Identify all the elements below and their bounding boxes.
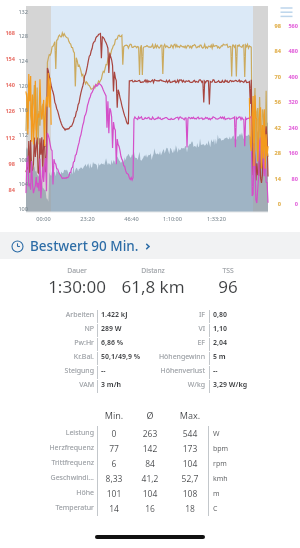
staticText: Höhe [18,488,94,498]
staticText: kmh [213,474,253,484]
staticText: 18 [165,503,215,515]
staticText: 1:10:00 [159,215,186,223]
staticText: 41,2 [125,473,175,485]
staticText: Kr.Bal. [20,352,94,362]
button[interactable]: Bestwert 90 Min. [0,232,300,259]
staticText: 50,1/49,9 % [101,352,173,362]
staticText: 0 [282,200,298,208]
staticText: 70 [269,73,281,81]
staticText: 3,29 W/kg [213,380,285,390]
staticText: m [213,489,253,499]
staticText: -- [101,366,173,376]
staticText: 132 [11,8,28,16]
staticText: 1,10 [213,324,285,334]
staticText: 173 [165,443,215,455]
staticText: 46:40 [118,215,145,223]
staticText: 104 [125,488,175,500]
staticText: 77 [89,443,139,455]
staticText: C [213,504,253,514]
staticText: 560 [282,22,298,30]
staticText: 0 [269,200,281,208]
staticText: Bestwert 90 Min. [30,237,139,255]
staticText: 400 [282,73,298,81]
staticText: 6 [89,458,139,470]
staticText: 128 [11,32,28,40]
staticText: Geschwindi... [18,473,94,483]
staticText: 116 [11,106,28,114]
staticText: W/kg [138,380,205,390]
staticText: 168 [0,29,15,37]
staticText: 84 [0,186,15,194]
staticText: TSS [188,266,268,275]
staticText: IF [138,310,205,320]
staticText: 2,04 [213,338,285,348]
staticText: rpm [213,459,253,469]
staticText: 140 [0,81,15,89]
staticText: 104 [165,458,215,470]
staticText: 100 [11,205,28,213]
staticText: 56 [269,98,281,106]
staticText: W [213,429,253,439]
staticText: 0 [89,428,139,440]
staticText: 16 [125,503,175,515]
staticText: 263 [125,428,175,440]
staticText: EF [138,338,205,348]
staticText: Min. [89,409,139,421]
staticText: 160 [282,149,298,157]
staticText: 108 [165,488,215,500]
staticText: 104 [11,180,28,188]
staticText: 6,86 % [101,338,173,348]
staticText: 8,33 [89,473,139,485]
staticText: 3 m/h [101,380,173,390]
staticText: Herzfrequenz [18,443,94,453]
staticText: 126 [0,107,15,115]
staticText: 112 [11,131,28,139]
staticText: 84 [269,47,281,55]
staticText: 14 [89,503,139,515]
staticText: 108 [11,156,28,164]
staticText: 320 [282,98,298,106]
staticText: 80 [282,175,298,183]
staticText: 101 [89,488,139,500]
staticText: 120 [11,82,28,90]
staticText: 142 [125,443,175,455]
staticText: Trittfrequenz [18,458,94,468]
staticText: 00:00 [30,215,57,223]
staticText: 98 [269,22,281,30]
staticText: Arbeiten [20,310,94,320]
staticText: 289 W [101,324,173,334]
staticText: 1:33:20 [203,215,230,223]
staticText: Pw:Hr [20,338,94,348]
staticText: 112 [0,134,15,142]
staticText: VI [138,324,205,334]
staticText: 98 [0,160,15,168]
staticText: Temperatur [18,503,94,513]
staticText: bpm [213,444,253,454]
staticText: Leistung [18,428,94,438]
staticText: 84 [125,458,175,470]
staticText: 28 [269,149,281,157]
staticText: 1.422 kJ [101,310,173,320]
staticText: Max. [165,409,215,421]
staticText: Höhengewinn [138,352,205,362]
staticText: 52,7 [165,473,215,485]
staticText: 96 [178,275,278,298]
button[interactable]: Menu [278,3,295,20]
staticText: Distanz [113,266,193,275]
staticText: -- [213,366,285,376]
staticText: 240 [282,124,298,132]
staticText: 480 [282,47,298,55]
staticText: VAM [20,380,94,390]
staticText: 14 [269,175,281,183]
staticText: 124 [11,57,28,65]
staticText: 42 [269,124,281,132]
staticText: NP [20,324,94,334]
staticText: 61,8 km [103,275,203,298]
staticText: Ø [125,409,175,421]
staticText: 23:20 [74,215,101,223]
staticText: 0,80 [213,310,285,320]
staticText: 154 [0,55,15,63]
staticText: Steigung [20,366,94,376]
staticText: 544 [165,428,215,440]
staticText: 1:30:00 [27,275,127,298]
